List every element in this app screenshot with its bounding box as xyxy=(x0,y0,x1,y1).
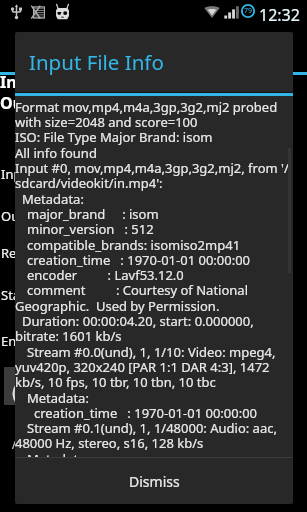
staticText: Input File Info xyxy=(29,48,164,76)
staticText: Metadata: xyxy=(27,389,89,407)
staticText: ( xyxy=(12,378,18,405)
button[interactable]: ( xyxy=(4,367,44,405)
staticText: Input video xyxy=(1,165,71,183)
staticText: 12:32 xyxy=(259,4,300,26)
staticText: Input file xyxy=(0,71,74,93)
staticText: Metadata: xyxy=(22,190,84,208)
staticText: Output video xyxy=(1,207,82,225)
staticText: Start time xyxy=(1,286,62,304)
staticText: Stream #0.0(und), 1, 1/10: Video: mpeg4, xyxy=(27,343,276,361)
staticText: Λ xyxy=(12,437,19,452)
staticText: Stream #0.1(und), 1, 1/48000: Audio: aac… xyxy=(27,419,277,437)
staticText: with size=2048 and score=100 xyxy=(15,113,198,131)
staticText: Output file xyxy=(0,92,87,114)
staticText: compatible_brands: isomiso2mp41 xyxy=(27,236,241,254)
staticText: End time xyxy=(1,332,56,350)
staticText: bitrate: 1601 kb/s xyxy=(15,327,122,345)
staticText: Input #0, mov,mp4,m4a,3gp,3g2,mj2, from … xyxy=(15,159,289,177)
button[interactable]: Dismiss xyxy=(15,458,293,504)
staticText: yuv420p, 320x240 [PAR 1:1 DAR 4:3], 1472 xyxy=(15,358,270,376)
staticText: Duration: 00:00:04.20, start: 0.000000, xyxy=(22,312,254,330)
staticText: creation_time : 1970-01-01 00:00:00 xyxy=(34,404,258,422)
staticText: ISO: File Type Major Brand: isom xyxy=(15,128,213,146)
staticText: Resolution xyxy=(1,244,66,262)
staticText: Geographic. Used by Permission. xyxy=(15,297,220,315)
staticText: minor_version : 512 xyxy=(27,220,154,238)
staticText: Dismiss xyxy=(129,472,180,491)
staticText: Metadata: xyxy=(27,450,89,457)
staticText: comment : Courtesy of National xyxy=(27,281,248,299)
staticText: kb/s, 10 fps, 10 tbr, 10 tbn, 10 tbc xyxy=(15,373,216,391)
staticText: All info found xyxy=(15,144,97,162)
staticText: 79 xyxy=(244,6,253,16)
staticText: major_brand : isom xyxy=(27,205,159,223)
staticText: creation_time : 1970-01-01 00:00:00 xyxy=(27,251,251,269)
staticText: sdcard/videokit/in.mp4': xyxy=(15,174,163,192)
staticText: Format mov,mp4,m4a,3gp,3g2,mj2 probed xyxy=(15,98,278,116)
staticText: encoder : Lavf53.12.0 xyxy=(27,266,184,284)
staticText: 48000 Hz, stereo, s16, 128 kb/s xyxy=(15,434,204,452)
